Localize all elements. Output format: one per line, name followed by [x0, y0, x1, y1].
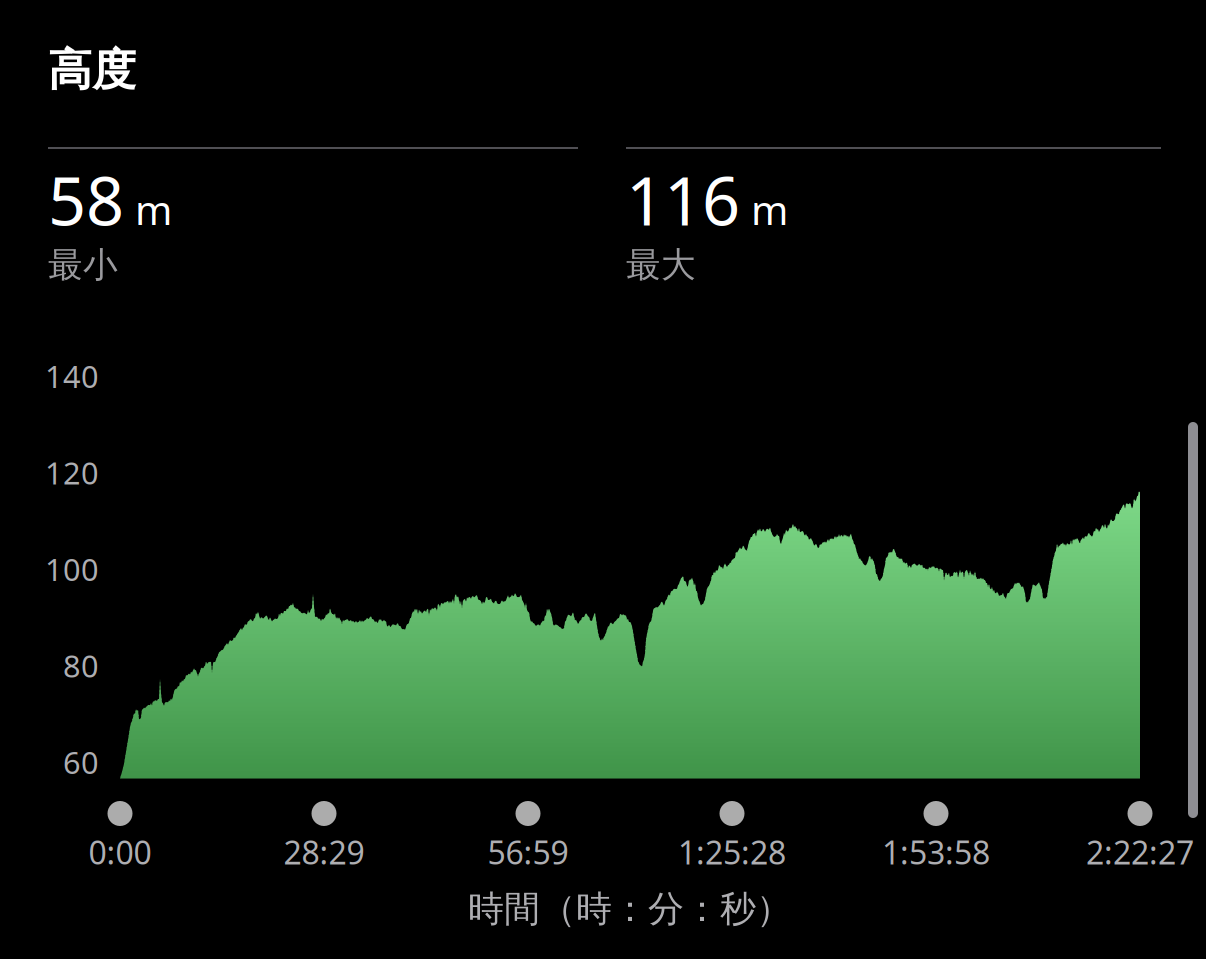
staticText: 140 [45, 356, 99, 396]
staticText: 1:25:28 [678, 831, 786, 873]
staticText: 100 [45, 549, 99, 589]
staticText: 58 [48, 155, 124, 244]
staticText: 28:29 [283, 831, 364, 873]
staticText: 116 [626, 155, 740, 244]
staticText: m [135, 183, 172, 236]
staticText: 高度 [48, 43, 136, 97]
staticText: 0:00 [88, 831, 151, 873]
staticText: 120 [45, 452, 99, 493]
staticText: 60 [63, 742, 99, 782]
staticText: 80 [63, 645, 99, 686]
staticText: 最小 [48, 244, 118, 286]
staticText: 56:59 [487, 831, 568, 873]
staticText: m [751, 183, 788, 236]
staticText: 2:22:27 [1086, 831, 1194, 873]
staticText: 1:53:58 [882, 831, 990, 873]
staticText: 最大 [626, 244, 696, 286]
staticText: 時間（時：分：秒） [468, 887, 792, 931]
button[interactable]: 高度グラフ [0, 0, 1206, 959]
